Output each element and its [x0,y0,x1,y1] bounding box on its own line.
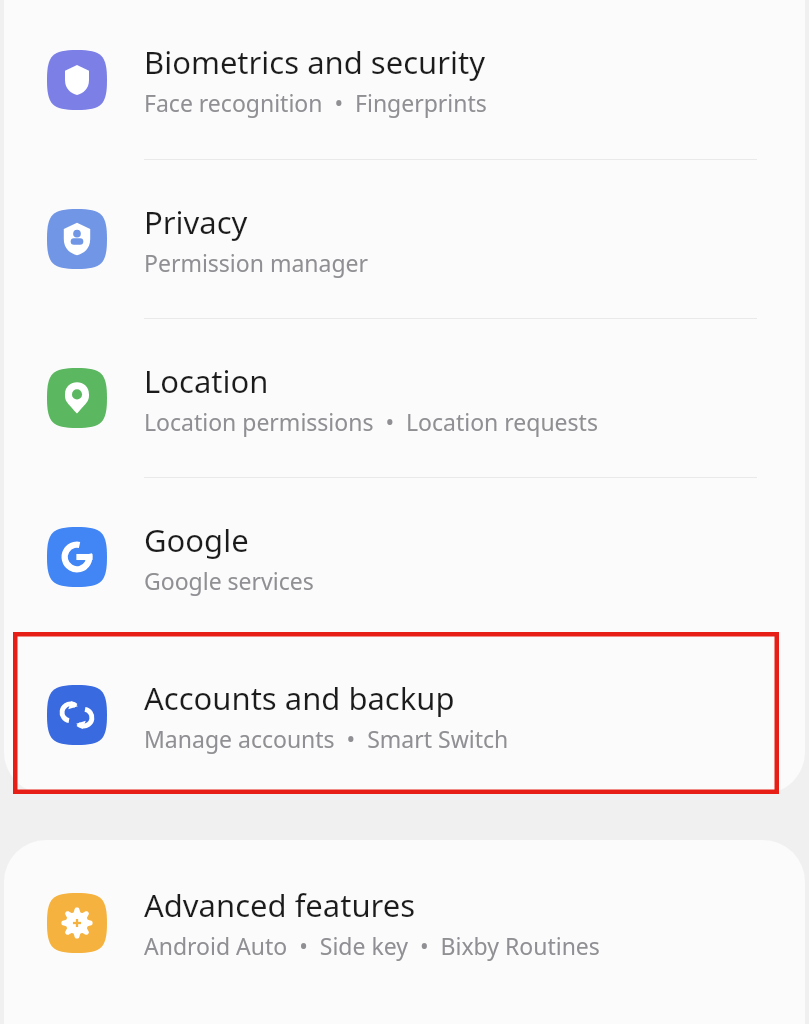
other: Google [47,527,107,587]
staticText: Face recognition • Fingerprints [144,87,487,118]
staticText: Manage accounts • Smart Switch [144,723,509,754]
button[interactable]: Accounts and backup [4,636,805,794]
button[interactable]: Privacy [4,160,805,318]
other: Location [47,368,107,428]
staticText: Google services [144,565,314,596]
staticText: Accounts and backup [144,677,455,719]
button[interactable]: Advanced features [4,840,805,1005]
other: Biometrics and security [47,50,107,110]
button[interactable]: Biometrics and security [4,0,805,159]
staticText: Privacy [144,201,248,243]
staticText: Android Auto • Side key • Bixby Routines [144,930,600,961]
staticText: Biometrics and security [144,41,485,83]
staticText: Location permissions • Location requests [144,406,598,437]
other: Accounts and backup [47,685,107,745]
staticText: Advanced features [144,884,416,926]
staticText: Location [144,360,269,402]
other: Advanced features [47,893,107,953]
staticText: Permission manager [144,247,369,278]
button[interactable]: Google [4,478,805,636]
button[interactable]: Location [4,319,805,477]
other: Privacy [47,209,107,269]
staticText: Google [144,519,249,561]
